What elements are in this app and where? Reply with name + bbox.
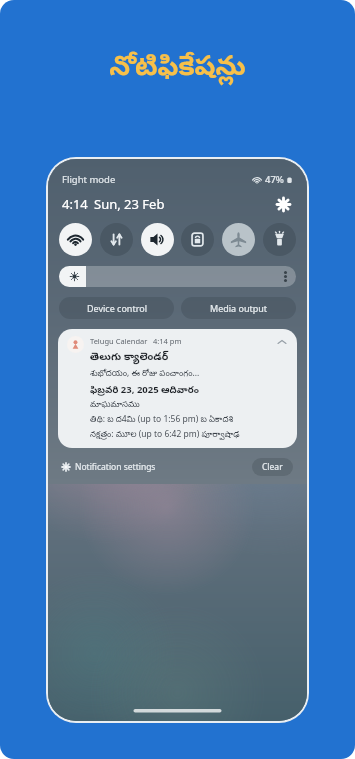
staticText: తిథి: బ ద4మి (up to 1:56 pm) బ ఏకాదశి: [90, 413, 234, 426]
staticText: Sun, 23 Feb: [94, 195, 165, 213]
button[interactable]: Settings: [273, 194, 293, 214]
button[interactable]: Flashlight: [263, 223, 296, 256]
staticText: నోటిఫికేషన్లు: [109, 52, 246, 89]
button[interactable]: Device control: [59, 297, 174, 319]
button[interactable]: Notification settings: [62, 461, 156, 473]
button[interactable]: Auto rotate: [181, 223, 214, 256]
button[interactable]: [59, 266, 296, 287]
staticText: Media output: [210, 302, 268, 314]
button[interactable]: Telugu Calendar: [58, 329, 297, 448]
staticText: Flight mode: [62, 173, 116, 186]
staticText: 4:14: [62, 195, 88, 213]
staticText: Device control: [87, 302, 147, 314]
staticText: Notification settings: [75, 461, 156, 473]
button[interactable]: Collapse: [276, 336, 288, 348]
button[interactable]: Media output: [181, 297, 296, 319]
staticText: 47%: [265, 173, 284, 186]
button[interactable]: Clear: [252, 458, 293, 476]
staticText: ఫిబ్రవరి 23, 2025 ఆదివారం: [90, 383, 199, 398]
staticText: మాఘమాసము: [90, 400, 140, 411]
staticText: Clear: [262, 461, 283, 473]
staticText: Telugu Calendar: [90, 336, 148, 346]
staticText: తెలుగు క్యాలెండర్: [90, 349, 169, 365]
staticText: నక్షత్రం: మూల (up to 6:42 pm) పూర్వాషాఢ: [90, 428, 240, 441]
staticText: 4:14 pm: [153, 336, 182, 346]
staticText: శుభోదయం, ఈ రోజు పంచాంగం...: [90, 367, 200, 380]
button[interactable]: Sound: [141, 223, 174, 256]
button[interactable]: Mobile data: [100, 223, 133, 256]
button[interactable]: Flight mode: [222, 223, 255, 256]
button[interactable]: Wi-Fi: [59, 223, 92, 256]
